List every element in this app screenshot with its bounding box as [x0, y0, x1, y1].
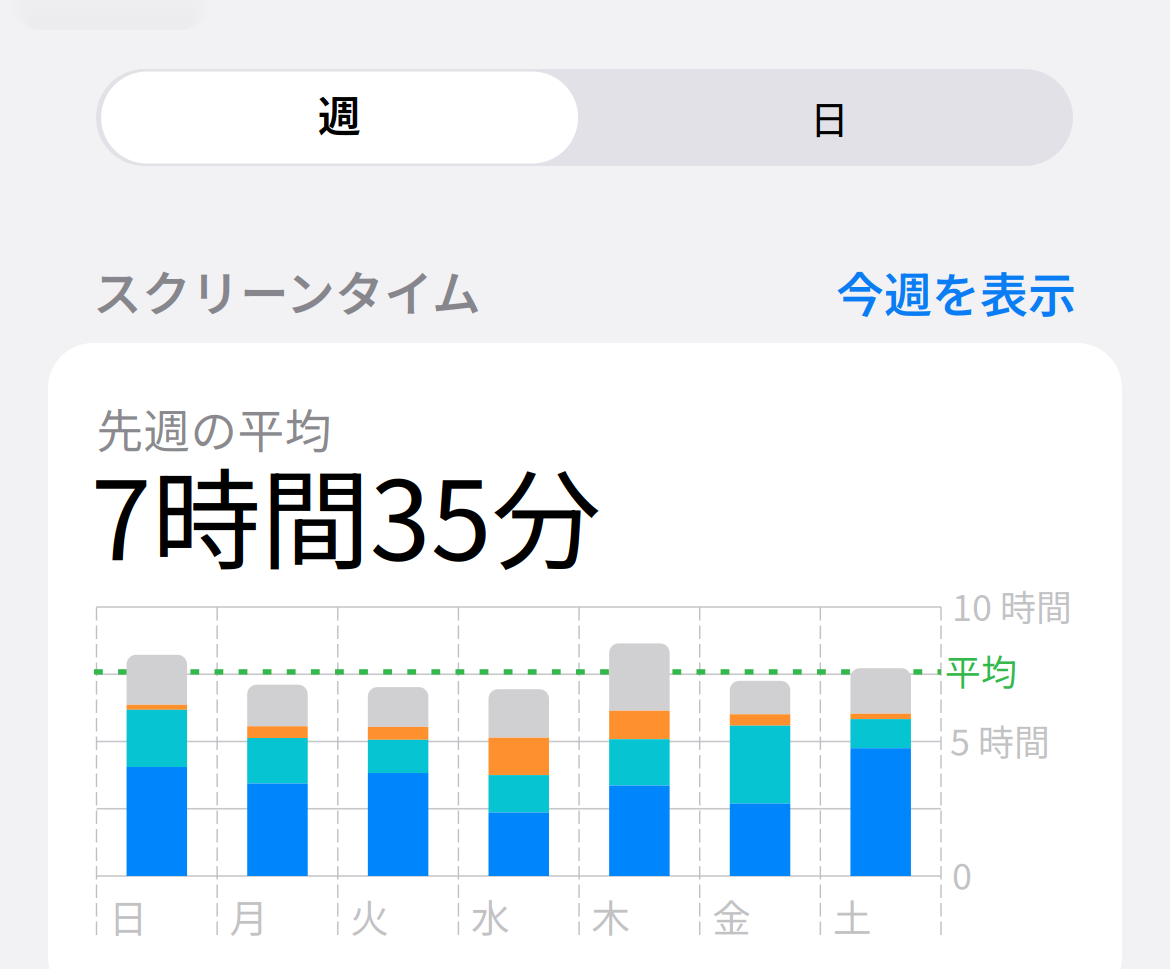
- staticText: 日: [810, 89, 849, 145]
- button[interactable]: 今週を表示: [836, 257, 1076, 326]
- staticText: 10 時間: [952, 579, 1072, 631]
- staticText: 日: [109, 888, 148, 944]
- button[interactable]: 日: [588, 69, 1071, 166]
- button[interactable]: 週: [98, 69, 581, 166]
- staticText: 5 時間: [950, 714, 1050, 766]
- staticText: 7時間35分: [91, 434, 601, 592]
- staticText: 木: [591, 888, 630, 944]
- staticText: 土: [833, 888, 872, 944]
- staticText: 先週の平均: [96, 394, 331, 462]
- staticText: 週: [318, 82, 361, 144]
- staticText: 火: [350, 888, 389, 944]
- staticText: 水: [471, 888, 510, 944]
- staticText: 0: [952, 848, 972, 900]
- staticText: 今週を表示: [836, 257, 1076, 326]
- staticText: 金: [712, 888, 751, 944]
- staticText: 平均: [945, 644, 1017, 696]
- staticText: スクリーンタイム: [93, 255, 481, 326]
- staticText: 月: [229, 888, 268, 944]
